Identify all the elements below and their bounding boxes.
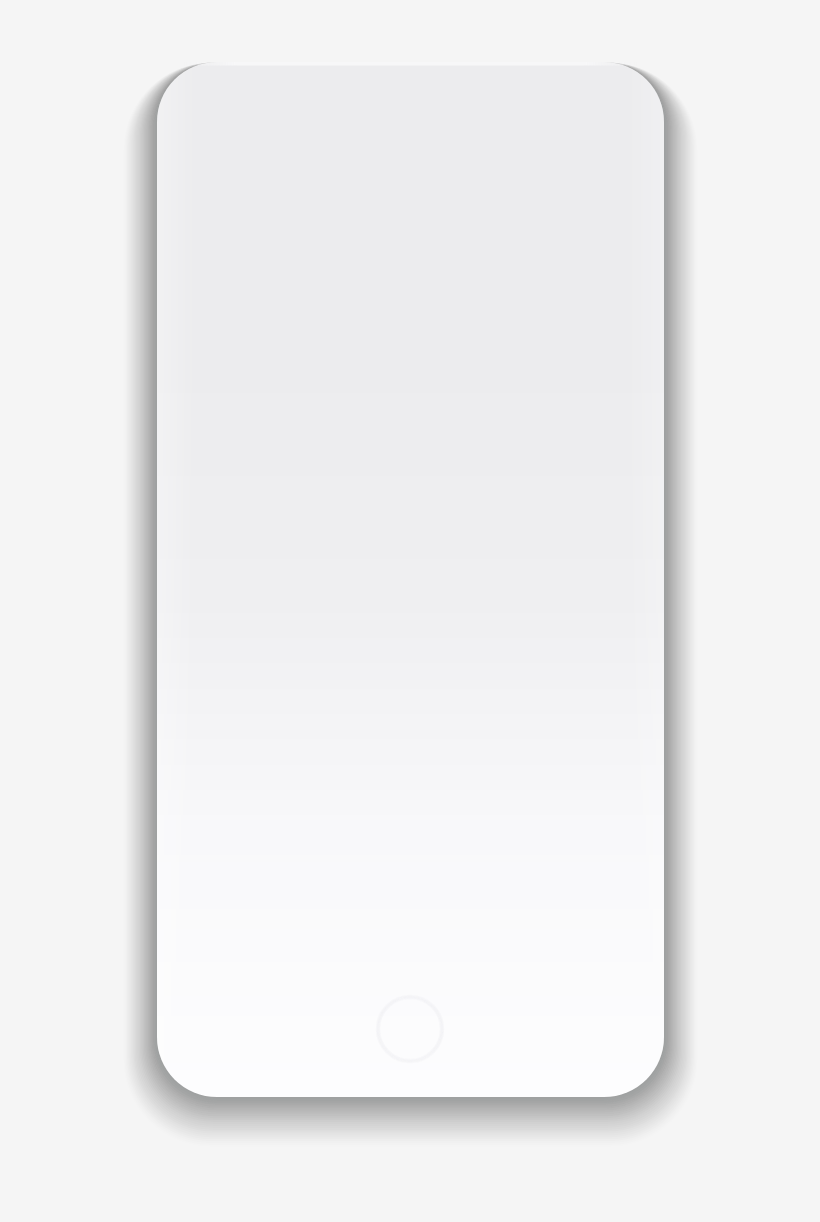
button[interactable]: Phone device mockup [0, 0, 820, 1222]
